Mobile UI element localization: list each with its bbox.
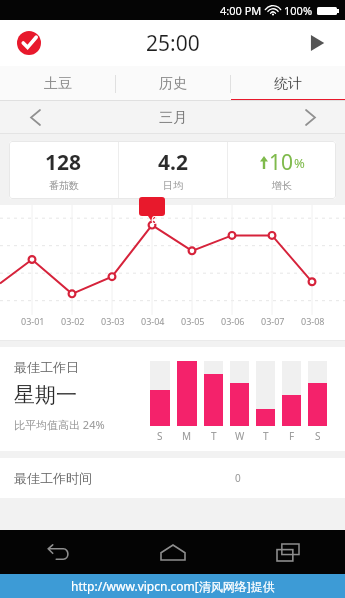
button[interactable]: 统计: [231, 66, 345, 101]
button[interactable]: 4.2: [119, 141, 227, 199]
staticText: 星期一: [14, 382, 77, 408]
button[interactable]: Tomato logo: [14, 28, 44, 58]
staticText: S: [157, 429, 163, 443]
staticText: 4:00 PM: [220, 3, 262, 18]
staticText: F: [289, 429, 295, 443]
staticText: 土豆: [44, 75, 72, 93]
staticText: 比平均值高出 24%: [14, 417, 105, 432]
button[interactable]: Recents: [230, 530, 345, 574]
staticText: W: [235, 429, 245, 443]
staticText: 0: [235, 471, 241, 485]
staticText: 统计: [274, 75, 302, 93]
staticText: %: [294, 154, 305, 172]
staticText: 03-01: [21, 315, 45, 327]
button[interactable]: Previous month: [0, 101, 70, 134]
staticText: 6: [146, 213, 162, 227]
staticText: 03-02: [61, 315, 85, 327]
staticText: 128: [45, 148, 82, 177]
staticText: 最佳工作日: [14, 359, 79, 375]
button[interactable]: Back: [0, 530, 115, 574]
staticText: 三月: [159, 109, 187, 127]
staticText: 03-07: [261, 315, 285, 327]
staticText: T: [263, 429, 269, 443]
button[interactable]: Start timer: [299, 25, 335, 61]
staticText: 03-08: [301, 315, 325, 327]
staticText: 日均: [163, 179, 183, 192]
staticText: 历史: [159, 75, 187, 93]
button[interactable]: Next month: [275, 101, 345, 134]
staticText: S: [315, 429, 321, 443]
button[interactable]: 10: [228, 141, 336, 199]
button[interactable]: Home: [115, 530, 230, 574]
staticText: 4.2: [158, 148, 188, 177]
staticText: 番茄数: [49, 179, 79, 192]
staticText: 最佳工作时间: [14, 470, 92, 486]
staticText: 03-06: [221, 315, 245, 327]
staticText: 03-03: [101, 315, 125, 327]
staticText: http://www.vipcn.com[清风网络]提供: [71, 578, 275, 594]
button[interactable]: 土豆: [0, 66, 115, 101]
staticText: 03-05: [181, 315, 205, 327]
button[interactable]: 128: [9, 141, 118, 199]
staticText: 100%: [284, 3, 313, 18]
staticText: T: [211, 429, 217, 443]
button[interactable]: 历史: [116, 66, 230, 101]
staticText: M: [182, 429, 192, 443]
staticText: 10: [269, 148, 294, 177]
staticText: 增长: [272, 179, 292, 192]
staticText: 25:00: [146, 29, 200, 58]
staticText: 03-04: [141, 315, 165, 327]
